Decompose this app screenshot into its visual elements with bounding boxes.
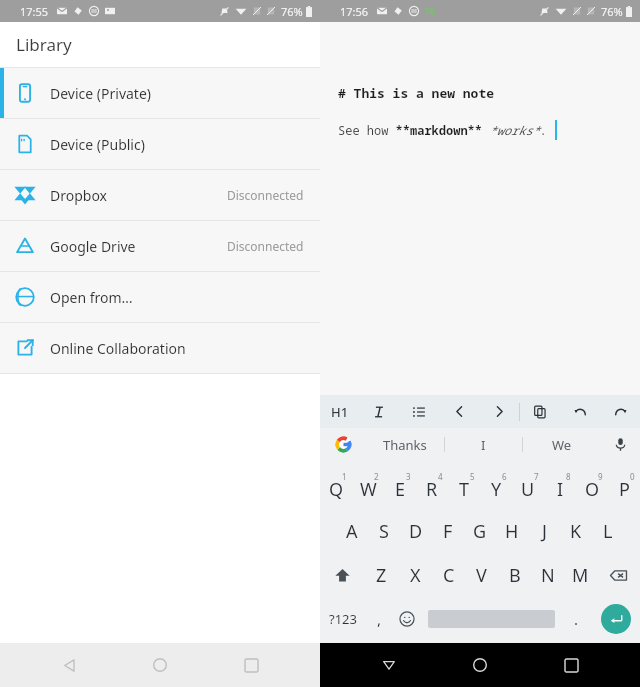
staticText: 7	[534, 471, 539, 482]
staticText: 0	[630, 471, 635, 482]
button[interactable]: Heading	[320, 395, 359, 428]
staticText: 17:55	[20, 4, 49, 19]
staticText: E	[395, 477, 406, 502]
button[interactable]: Home	[138, 643, 182, 687]
staticText: M	[572, 563, 589, 588]
staticText: # This is a new note	[338, 84, 495, 102]
staticText: 2	[374, 471, 379, 482]
button[interactable]: T	[448, 465, 480, 509]
button[interactable]: Copy	[520, 395, 560, 428]
staticText: Q	[329, 477, 344, 502]
button[interactable]: I	[544, 465, 576, 509]
button[interactable]: Open from…	[0, 272, 320, 322]
button[interactable]: Shift	[320, 553, 364, 597]
staticText: We	[552, 436, 572, 454]
staticText: 8	[566, 471, 571, 482]
button[interactable]: Recents	[229, 643, 273, 687]
staticText: R	[426, 477, 438, 502]
staticText: Device (Private)	[50, 84, 151, 103]
button[interactable]: P	[608, 465, 640, 509]
button[interactable]: Undo	[560, 395, 600, 428]
staticText: I	[557, 477, 564, 502]
button[interactable]: ,	[366, 597, 392, 641]
staticText: 4	[438, 471, 443, 482]
button[interactable]: Y	[480, 465, 512, 509]
staticText: Y	[491, 477, 502, 502]
staticText: K	[570, 519, 582, 544]
button[interactable]: L	[592, 509, 624, 553]
button[interactable]: Next	[479, 395, 519, 428]
button[interactable]: Z	[364, 553, 398, 597]
staticText: C	[443, 563, 455, 588]
staticText: Disconnected	[227, 187, 304, 203]
staticText: 3	[406, 471, 411, 482]
button[interactable]: K	[560, 509, 592, 553]
staticText: Z	[376, 563, 387, 588]
button[interactable]: Google	[320, 428, 366, 461]
button[interactable]: Italic	[359, 395, 399, 428]
button[interactable]: Emoji	[392, 597, 422, 641]
button[interactable]: B	[498, 553, 531, 597]
button[interactable]: E	[384, 465, 416, 509]
staticText: S	[379, 519, 389, 544]
button[interactable]: M	[564, 553, 597, 597]
button[interactable]: H	[496, 509, 528, 553]
button[interactable]: Q	[320, 465, 352, 509]
staticText: P	[619, 477, 630, 502]
staticText: 1	[342, 471, 347, 482]
button[interactable]: G	[464, 509, 496, 553]
button[interactable]: Bullet list	[399, 395, 439, 428]
staticText: O	[585, 477, 600, 502]
button[interactable]: Previous	[439, 395, 479, 428]
button[interactable]: U	[512, 465, 544, 509]
staticText: 6	[502, 471, 507, 482]
button[interactable]: Hide keyboard	[367, 643, 411, 687]
button[interactable]: S	[368, 509, 400, 553]
staticText: 9	[598, 471, 603, 482]
staticText: H	[505, 519, 519, 544]
button[interactable]: R	[416, 465, 448, 509]
button[interactable]: Enter	[591, 597, 640, 641]
button[interactable]: I	[445, 428, 522, 461]
button[interactable]: A	[336, 509, 368, 553]
staticText: Online Collaboration	[50, 339, 186, 358]
staticText: X	[410, 563, 421, 588]
button[interactable]: Device (Private)	[0, 68, 320, 118]
staticText: ?123	[329, 610, 357, 628]
button[interactable]: J	[528, 509, 560, 553]
button[interactable]: Recents	[549, 643, 593, 687]
button[interactable]: Dropbox	[0, 170, 320, 220]
staticText: G	[473, 519, 487, 544]
button[interactable]: Online Collaboration	[0, 323, 320, 373]
button[interactable]: .	[561, 597, 591, 641]
button[interactable]: X	[398, 553, 432, 597]
staticText: J	[542, 519, 547, 544]
staticText: See how **markdown** *works*.	[338, 122, 547, 138]
staticText: U	[521, 477, 535, 502]
button[interactable]: Device (Public)	[0, 119, 320, 169]
button[interactable]: C	[432, 553, 465, 597]
button[interactable]: Back	[47, 643, 91, 687]
button[interactable]: Google Drive	[0, 221, 320, 271]
staticText: T	[459, 477, 470, 502]
button[interactable]: Redo	[600, 395, 640, 428]
staticText: 76%	[601, 4, 623, 19]
staticText: F	[443, 519, 453, 544]
button[interactable]: V	[465, 553, 498, 597]
button[interactable]: N	[531, 553, 564, 597]
staticText: Google Drive	[50, 237, 136, 256]
button[interactable]: Thanks	[366, 428, 444, 461]
button[interactable]: ?123	[320, 597, 366, 641]
button[interactable]: W	[352, 465, 384, 509]
staticText: 76%	[281, 4, 303, 19]
button[interactable]: We	[523, 428, 600, 461]
staticText: Library	[16, 33, 72, 56]
button[interactable]: Voice input	[600, 428, 640, 461]
button[interactable]: Backspace	[597, 553, 640, 597]
button[interactable]: D	[400, 509, 432, 553]
staticText: B	[509, 563, 521, 588]
button[interactable]: O	[576, 465, 608, 509]
button[interactable]: Home	[458, 643, 502, 687]
button[interactable]: F	[432, 509, 464, 553]
